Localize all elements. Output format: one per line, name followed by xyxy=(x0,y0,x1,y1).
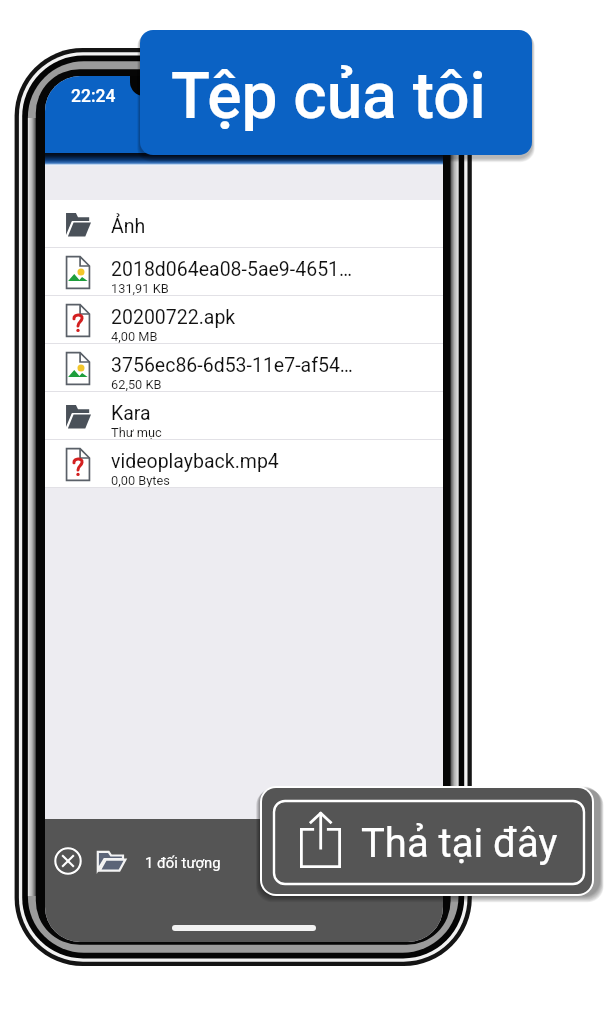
staticText: Ảnh xyxy=(111,215,146,238)
button[interactable]: Tệp của tôi xyxy=(140,30,532,155)
staticText: Kara xyxy=(111,402,151,425)
staticText: 1 đối tượng xyxy=(145,854,221,871)
staticText: 20200722.apk xyxy=(111,306,236,329)
button[interactable]: 2018d064ea08-5ae9-4651… xyxy=(45,248,443,296)
staticText: videoplayback.mp4 xyxy=(111,450,279,473)
staticText: 22:24 xyxy=(71,86,116,107)
button[interactable]: Kara xyxy=(45,392,443,440)
button[interactable]: Ảnh xyxy=(45,200,443,248)
staticText: Thả tại đây xyxy=(361,820,558,867)
button[interactable]: Cancel xyxy=(48,841,88,881)
staticText: 4,00 MB xyxy=(111,329,158,344)
staticText: 3756ec86-6d53-11e7-af54… xyxy=(111,354,353,377)
staticText: 2018d064ea08-5ae9-4651… xyxy=(111,258,353,281)
button[interactable]: 20200722.apk xyxy=(45,296,443,344)
staticText: Tệp của tôi xyxy=(171,59,486,134)
button[interactable]: 3756ec86-6d53-11e7-af54… xyxy=(45,344,443,392)
button[interactable]: Thả tại đây xyxy=(262,788,592,894)
staticText: Thư mục xyxy=(111,425,162,440)
staticText: 62,50 KB xyxy=(111,377,162,392)
staticText: 131,91 KB xyxy=(111,281,169,296)
button[interactable]: Folder xyxy=(91,841,131,881)
staticText: 0,00 Bytes xyxy=(111,473,170,488)
button[interactable]: videoplayback.mp4 xyxy=(45,440,443,488)
